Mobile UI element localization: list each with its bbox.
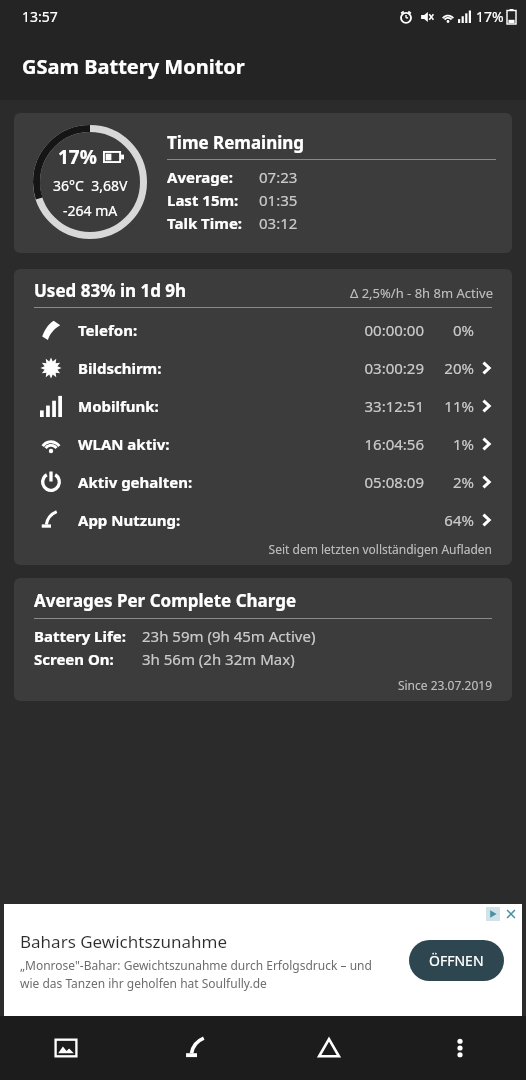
button[interactable]: Delta (297, 1016, 361, 1080)
staticText: Time Remaining (167, 131, 305, 154)
staticText: Seit dem letzten vollständigen Aufladen (14, 541, 492, 557)
staticText: „Monrose"-Bahar: Gewichtszunahme durch E… (20, 957, 372, 973)
button[interactable]: More options (428, 1016, 492, 1080)
button[interactable]: Bildschirm: (14, 349, 512, 387)
staticText: 23h 59m (9h 45m Active) (142, 626, 316, 646)
staticText: Screen On: (34, 649, 114, 669)
staticText: Battery Life: (34, 626, 126, 646)
staticText: 13:57 (22, 7, 58, 26)
button[interactable]: App Nutzung: (14, 501, 512, 539)
other: Close ad (504, 907, 518, 921)
staticText: 05:08:09 (338, 472, 424, 492)
staticText: ÖFFNEN (429, 951, 484, 970)
staticText: Telefon: (78, 320, 138, 340)
staticText: Used 83% in 1d 9h (34, 279, 187, 302)
staticText: Bildschirm: (78, 358, 162, 378)
staticText: Since 23.07.2019 (14, 677, 492, 693)
staticText: 16:04:56 (338, 434, 424, 454)
staticText: 00:00:00 (338, 320, 424, 340)
staticText: 0% (436, 320, 474, 340)
staticText: WLAN aktiv: (78, 434, 170, 454)
staticText: 03:12 (259, 213, 298, 233)
staticText: 03:00:29 (338, 358, 424, 378)
button[interactable]: Telefon: (14, 311, 512, 349)
staticText: 64% (436, 510, 474, 530)
staticText: Last 15m: (167, 190, 239, 210)
staticText: 1% (436, 434, 474, 454)
staticText: -264 mA (63, 201, 118, 220)
staticText: Averages Per Complete Charge (34, 589, 297, 612)
button[interactable]: WLAN aktiv: (14, 425, 512, 463)
staticText: 01:35 (259, 190, 298, 210)
button[interactable]: Aktiv gehalten: (14, 463, 512, 501)
staticText: Mobilfunk: (78, 396, 159, 416)
staticText: wie das Tanzen ihr geholfen hat Soulfull… (20, 975, 267, 991)
staticText: Δ 2,5%/h - 8h 8m Active (350, 284, 494, 302)
staticText: 33:12:51 (338, 396, 424, 416)
staticText: 07:23 (259, 167, 298, 187)
staticText: 36°C 3,68V (53, 176, 128, 195)
staticText: 3h 56m (2h 32m Max) (142, 649, 295, 669)
button[interactable]: App usage (165, 1016, 229, 1080)
staticText: 20% (436, 358, 474, 378)
staticText: 2% (436, 472, 474, 492)
staticText: 17% (476, 7, 504, 26)
button[interactable]: ÖFFNEN (409, 940, 504, 981)
staticText: Talk Time: (167, 213, 243, 233)
staticText: 11% (436, 396, 474, 416)
staticText: 17% (58, 144, 97, 170)
other: Ad info (486, 907, 500, 921)
staticText: Average: (167, 167, 233, 187)
staticText: App Nutzung: (78, 510, 181, 530)
staticText: Aktiv gehalten: (78, 472, 193, 492)
staticText: Bahars Gewichtszunahme (20, 930, 228, 953)
staticText: GSam Battery Monitor (22, 53, 245, 80)
button[interactable]: Mobilfunk: (14, 387, 512, 425)
button[interactable]: Charts (34, 1016, 98, 1080)
